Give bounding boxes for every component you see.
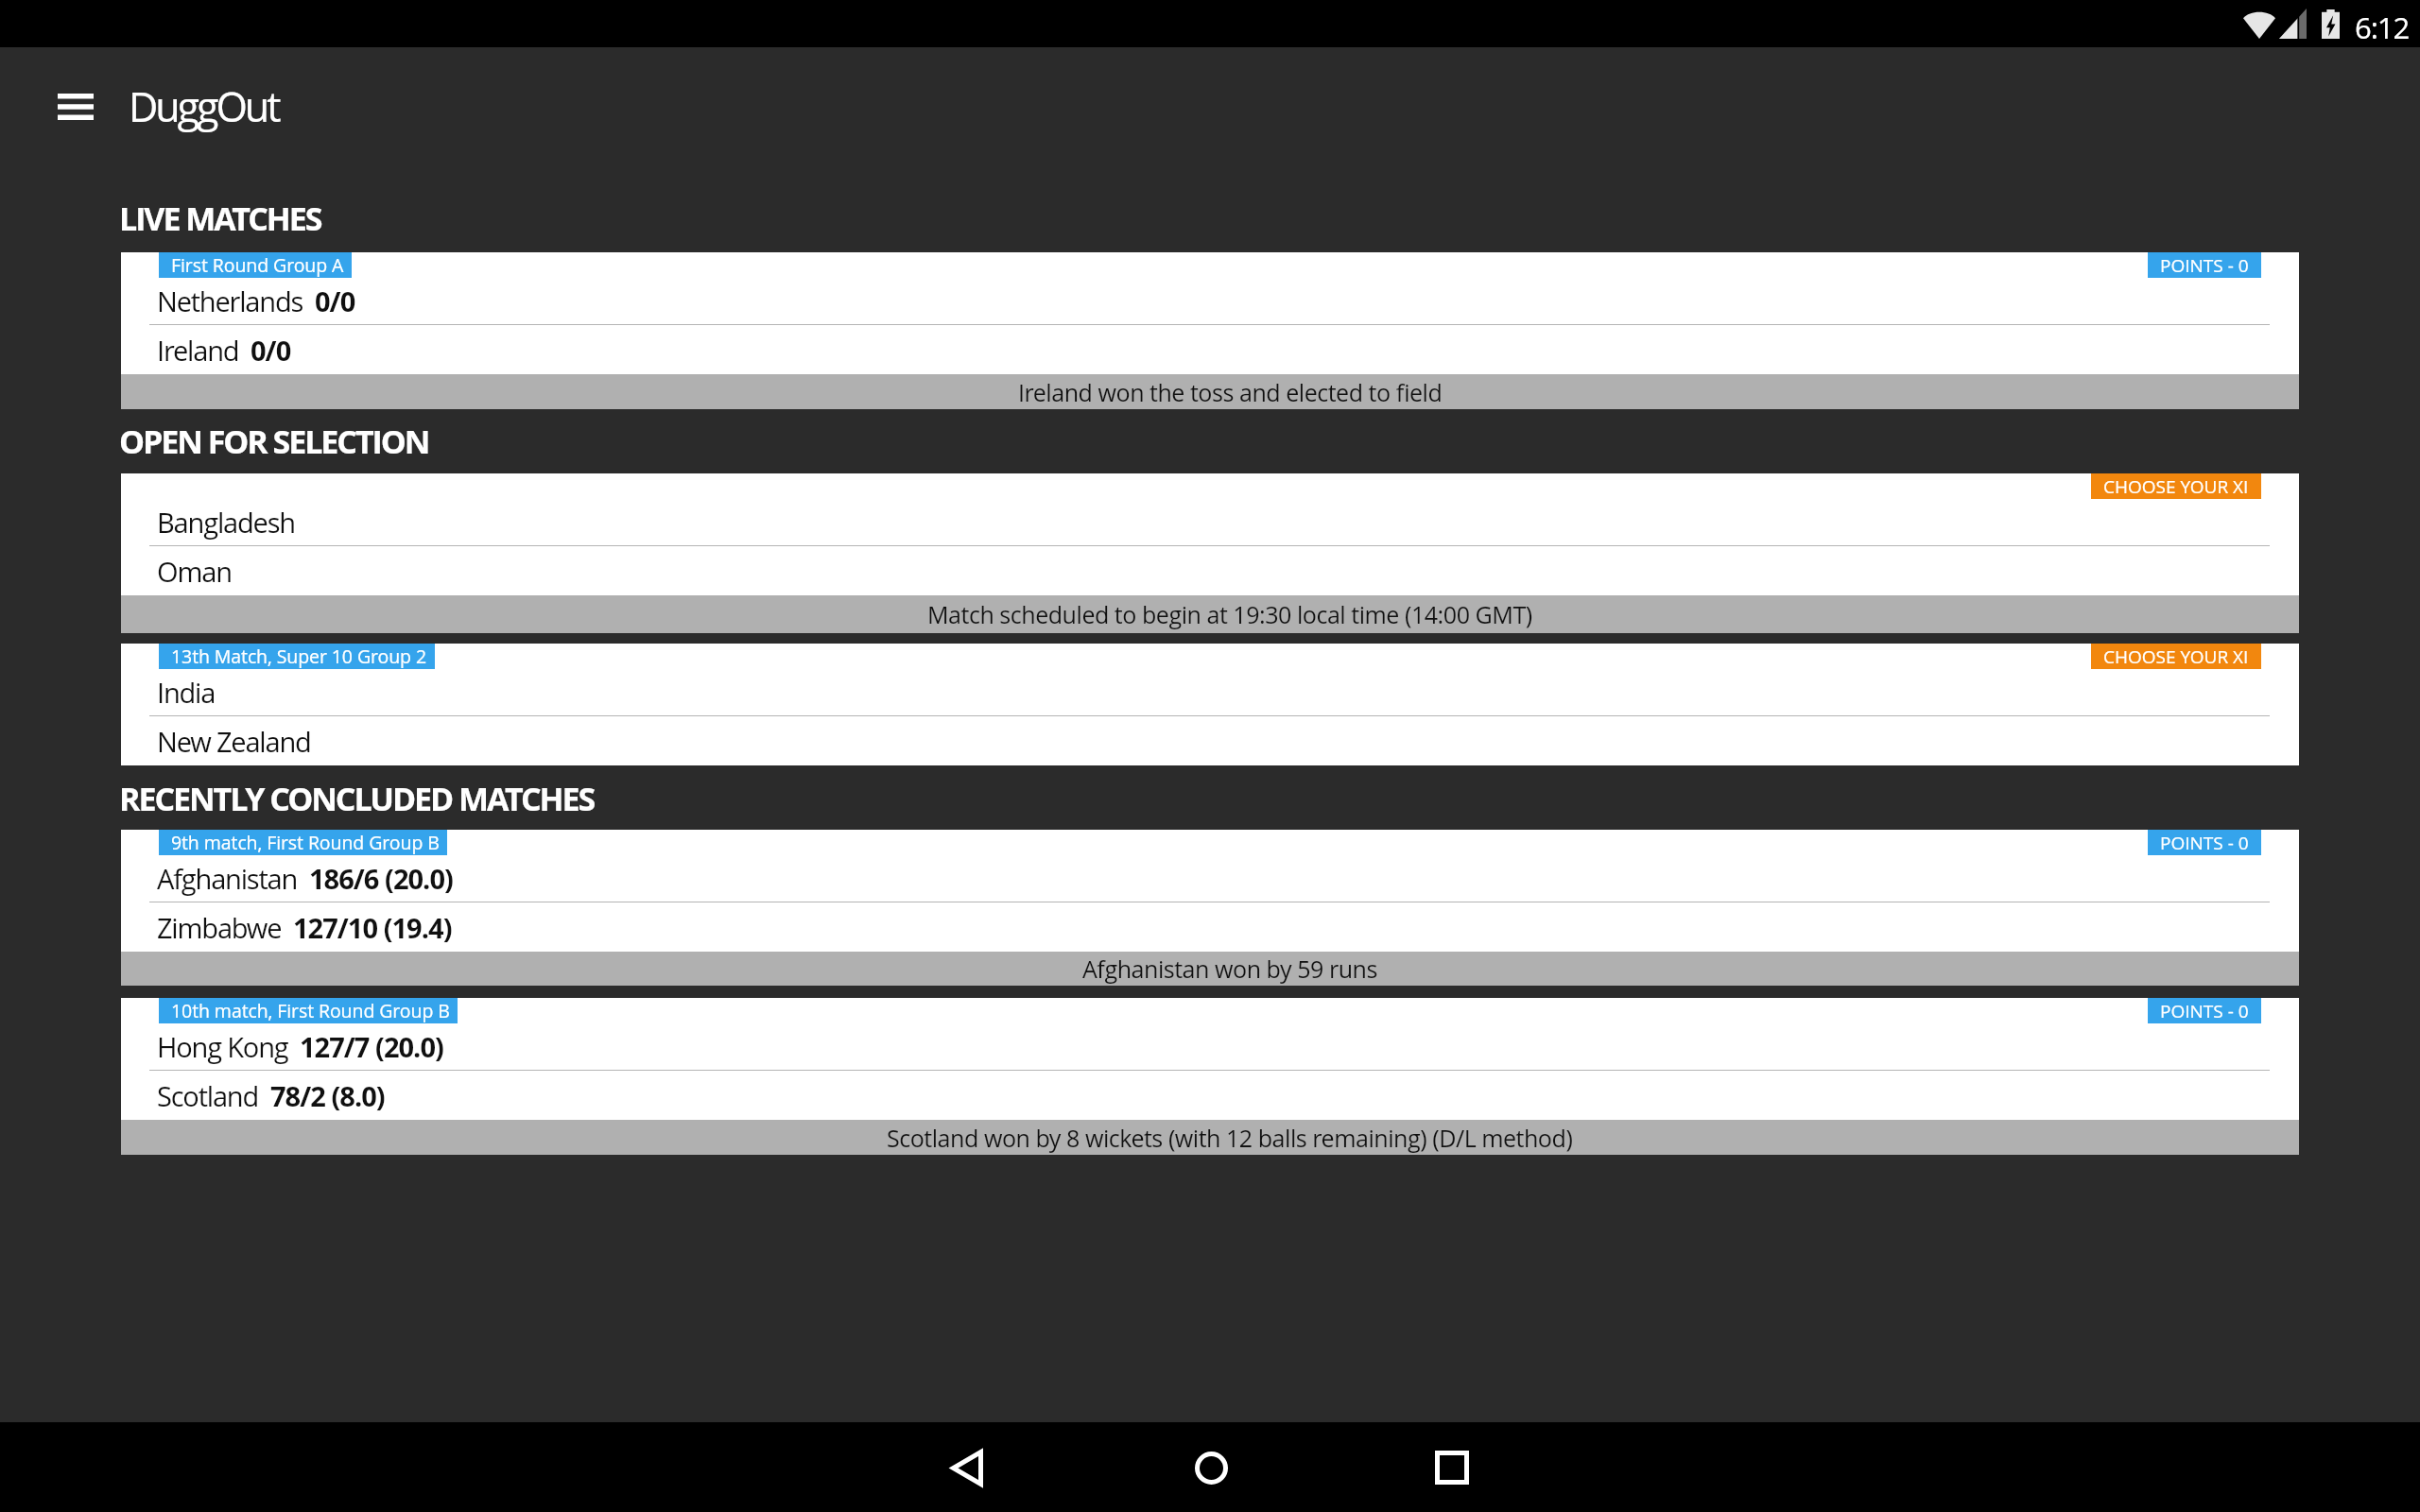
staticText: 13th Match, Super 10 Group 2	[171, 644, 427, 669]
staticText: LIVE MATCHES	[119, 197, 321, 240]
staticText: Bangladesh	[157, 504, 295, 541]
staticText: Netherlands	[157, 283, 303, 319]
button[interactable]: First Round Group A	[121, 252, 2299, 409]
button[interactable]: CHOOSE YOUR XI	[2091, 473, 2261, 499]
button[interactable]: Open navigation drawer	[48, 74, 103, 140]
staticText: DuggOut	[129, 78, 279, 134]
button[interactable]: CHOOSE YOUR XI	[2091, 644, 2261, 669]
staticText: Afghanistan won by 59 runs	[1082, 953, 1377, 985]
staticText: Oman	[157, 553, 232, 590]
staticText: CHOOSE YOUR XI	[2103, 474, 2249, 499]
staticText: Ireland	[157, 332, 239, 369]
button[interactable]: Home	[1154, 1425, 1268, 1510]
staticText: 0/0	[315, 283, 355, 319]
staticText: 6:12	[2355, 8, 2410, 47]
staticText: POINTS - 0	[2160, 831, 2249, 855]
staticText: Afghanistan	[157, 860, 298, 897]
staticText: 78/2 (8.0)	[270, 1077, 385, 1114]
staticText: Hong Kong	[157, 1028, 288, 1065]
staticText: Scotland won by 8 wickets (with 12 balls…	[887, 1122, 1573, 1154]
staticText: CHOOSE YOUR XI	[2103, 644, 2249, 669]
staticText: 127/7 (20.0)	[300, 1028, 443, 1065]
staticText: Scotland	[157, 1077, 259, 1114]
button[interactable]: POINTS - 0	[2148, 998, 2261, 1023]
staticText: First Round Group A	[171, 252, 344, 278]
staticText: New Zealand	[157, 723, 311, 760]
button[interactable]: Recent apps	[1395, 1425, 1509, 1510]
staticText: 127/10 (19.4)	[293, 909, 452, 946]
staticText: POINTS - 0	[2160, 253, 2249, 278]
staticText: Ireland won the toss and elected to fiel…	[1018, 376, 1443, 408]
button[interactable]: CHOOSE YOUR XI	[121, 473, 2299, 633]
button[interactable]: 13th Match, Super 10 Group 2	[121, 644, 2299, 765]
button[interactable]: 9th match, First Round Group B	[121, 830, 2299, 986]
staticText: OPEN FOR SELECTION	[119, 420, 429, 463]
button[interactable]: POINTS - 0	[2148, 252, 2261, 278]
staticText: Zimbabwe	[157, 909, 282, 946]
button[interactable]: 10th match, First Round Group B	[121, 998, 2299, 1155]
button[interactable]: Back	[910, 1425, 1024, 1510]
staticText: 0/0	[251, 332, 291, 369]
staticText: POINTS - 0	[2160, 999, 2249, 1023]
button[interactable]: POINTS - 0	[2148, 830, 2261, 855]
staticText: 10th match, First Round Group B	[171, 998, 450, 1023]
staticText: 9th match, First Round Group B	[171, 830, 440, 855]
staticText: RECENTLY CONCLUDED MATCHES	[119, 777, 595, 820]
staticText: Match scheduled to begin at 19:30 local …	[927, 598, 1532, 630]
staticText: 186/6 (20.0)	[309, 860, 453, 897]
staticText: India	[157, 674, 216, 711]
